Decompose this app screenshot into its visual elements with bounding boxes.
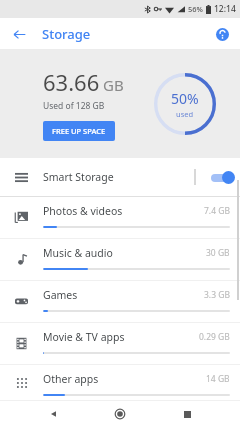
button[interactable]: Smart Storage toggle [196,158,240,196]
staticText: FREE UP SPACE [52,126,106,136]
staticText: 3.3 GB [204,289,230,301]
staticText: 56% [188,4,203,14]
button[interactable]: Smart Storage [0,158,240,196]
staticText: 7.4 GB [204,205,230,217]
button[interactable]: Games [0,281,240,323]
staticText: Photos & videos [43,204,204,218]
staticText: used [176,109,194,119]
button[interactable]: Other apps [0,365,240,401]
staticText: 30 GB [206,247,230,259]
staticText: Smart Storage [43,170,194,184]
button[interactable]: Movie & TV apps [0,323,240,365]
button[interactable]: Help [211,23,233,45]
staticText: GB [103,75,124,95]
staticText: 12:14 [214,3,236,15]
staticText: Other apps [43,372,206,386]
staticText: Used of 128 GB [43,100,105,112]
button[interactable]: Photos & videos [0,197,240,239]
staticText: Music & audio [43,246,206,260]
staticText: Movie & TV apps [43,330,199,344]
button[interactable]: Recent apps [174,401,200,427]
staticText: Storage [42,25,91,43]
staticText: 14 GB [206,373,230,385]
staticText: 0.29 GB [199,331,230,343]
button[interactable]: Home [107,401,133,427]
button[interactable]: Back [8,23,30,45]
staticText: Games [43,288,204,302]
button[interactable]: Back [41,401,67,427]
staticText: 63.66 [43,67,100,97]
staticText: 50% [171,89,199,108]
button[interactable]: Music & audio [0,239,240,281]
button[interactable]: FREE UP SPACE [43,121,115,141]
